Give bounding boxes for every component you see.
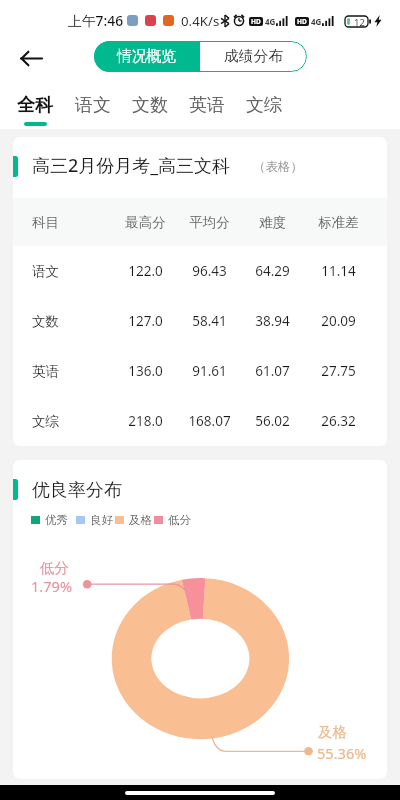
button[interactable]: 全科 — [9, 87, 61, 129]
staticText: 低分 — [40, 559, 69, 577]
staticText: HD — [297, 17, 307, 26]
button[interactable]: 成绩分布 — [200, 41, 307, 72]
staticText: 情况概览 — [117, 47, 177, 66]
staticText: 平均分 — [189, 214, 230, 231]
button[interactable] — [13, 346, 387, 396]
staticText: 英语 — [189, 94, 225, 117]
staticText: 及格 — [318, 723, 347, 741]
staticText: 语文 — [75, 94, 111, 117]
staticText: 高三2月份月考_高三文科 — [32, 153, 231, 178]
staticText: 122.0 — [128, 262, 163, 280]
staticText: 良好 — [90, 513, 113, 527]
staticText: 96.43 — [192, 262, 227, 280]
staticText: 20.09 — [321, 312, 356, 330]
button[interactable]: 语文 — [67, 87, 119, 129]
button[interactable]: 文数 — [124, 87, 176, 129]
staticText: 26.32 — [321, 412, 356, 430]
staticText: 1.79% — [31, 576, 73, 596]
staticText: 38.94 — [255, 312, 290, 330]
button[interactable]: 情况概览 — [94, 41, 200, 72]
staticText: 58.41 — [192, 312, 227, 330]
button[interactable] — [13, 396, 387, 446]
staticText: 优秀 — [45, 513, 68, 527]
staticText: 最高分 — [125, 214, 166, 231]
staticText: 91.61 — [192, 362, 227, 380]
staticText: 语文 — [32, 263, 59, 280]
staticText: 文数 — [132, 94, 168, 117]
staticText: 11.14 — [321, 262, 356, 280]
staticText: （表格） — [253, 159, 303, 175]
staticText: 127.0 — [128, 312, 163, 330]
staticText: 文综 — [32, 413, 59, 430]
staticText: 56.02 — [255, 412, 290, 430]
staticText: 全科 — [17, 94, 53, 117]
staticText: 标准差 — [318, 214, 359, 231]
staticText: 及格 — [129, 513, 152, 527]
staticText: 61.07 — [255, 362, 290, 380]
staticText: 上午7:46 — [68, 11, 124, 30]
staticText: 12 — [354, 16, 365, 27]
staticText: 文数 — [32, 313, 59, 330]
staticText: 文综 — [246, 94, 282, 117]
staticText: 4G — [265, 16, 276, 27]
button[interactable] — [13, 246, 387, 296]
staticText: 0.4K/s — [181, 12, 220, 30]
staticText: 218.0 — [128, 412, 163, 430]
staticText: 优良率分布 — [32, 479, 122, 502]
staticText: 难度 — [259, 214, 286, 231]
staticText: 英语 — [32, 363, 59, 380]
staticText: 168.07 — [188, 412, 231, 430]
button[interactable]: Back — [9, 36, 53, 80]
button[interactable] — [13, 296, 387, 346]
button[interactable]: 文综 — [238, 87, 290, 129]
staticText: 55.36% — [317, 743, 367, 763]
button[interactable]: 英语 — [181, 87, 233, 129]
staticText: 科目 — [32, 214, 59, 231]
staticText: 64.29 — [255, 262, 290, 280]
staticText: 136.0 — [128, 362, 163, 380]
staticText: 成绩分布 — [224, 47, 284, 66]
staticText: 27.75 — [321, 362, 356, 380]
staticText: HD — [251, 17, 261, 26]
staticText: 低分 — [168, 513, 191, 527]
staticText: 4G — [311, 16, 322, 27]
